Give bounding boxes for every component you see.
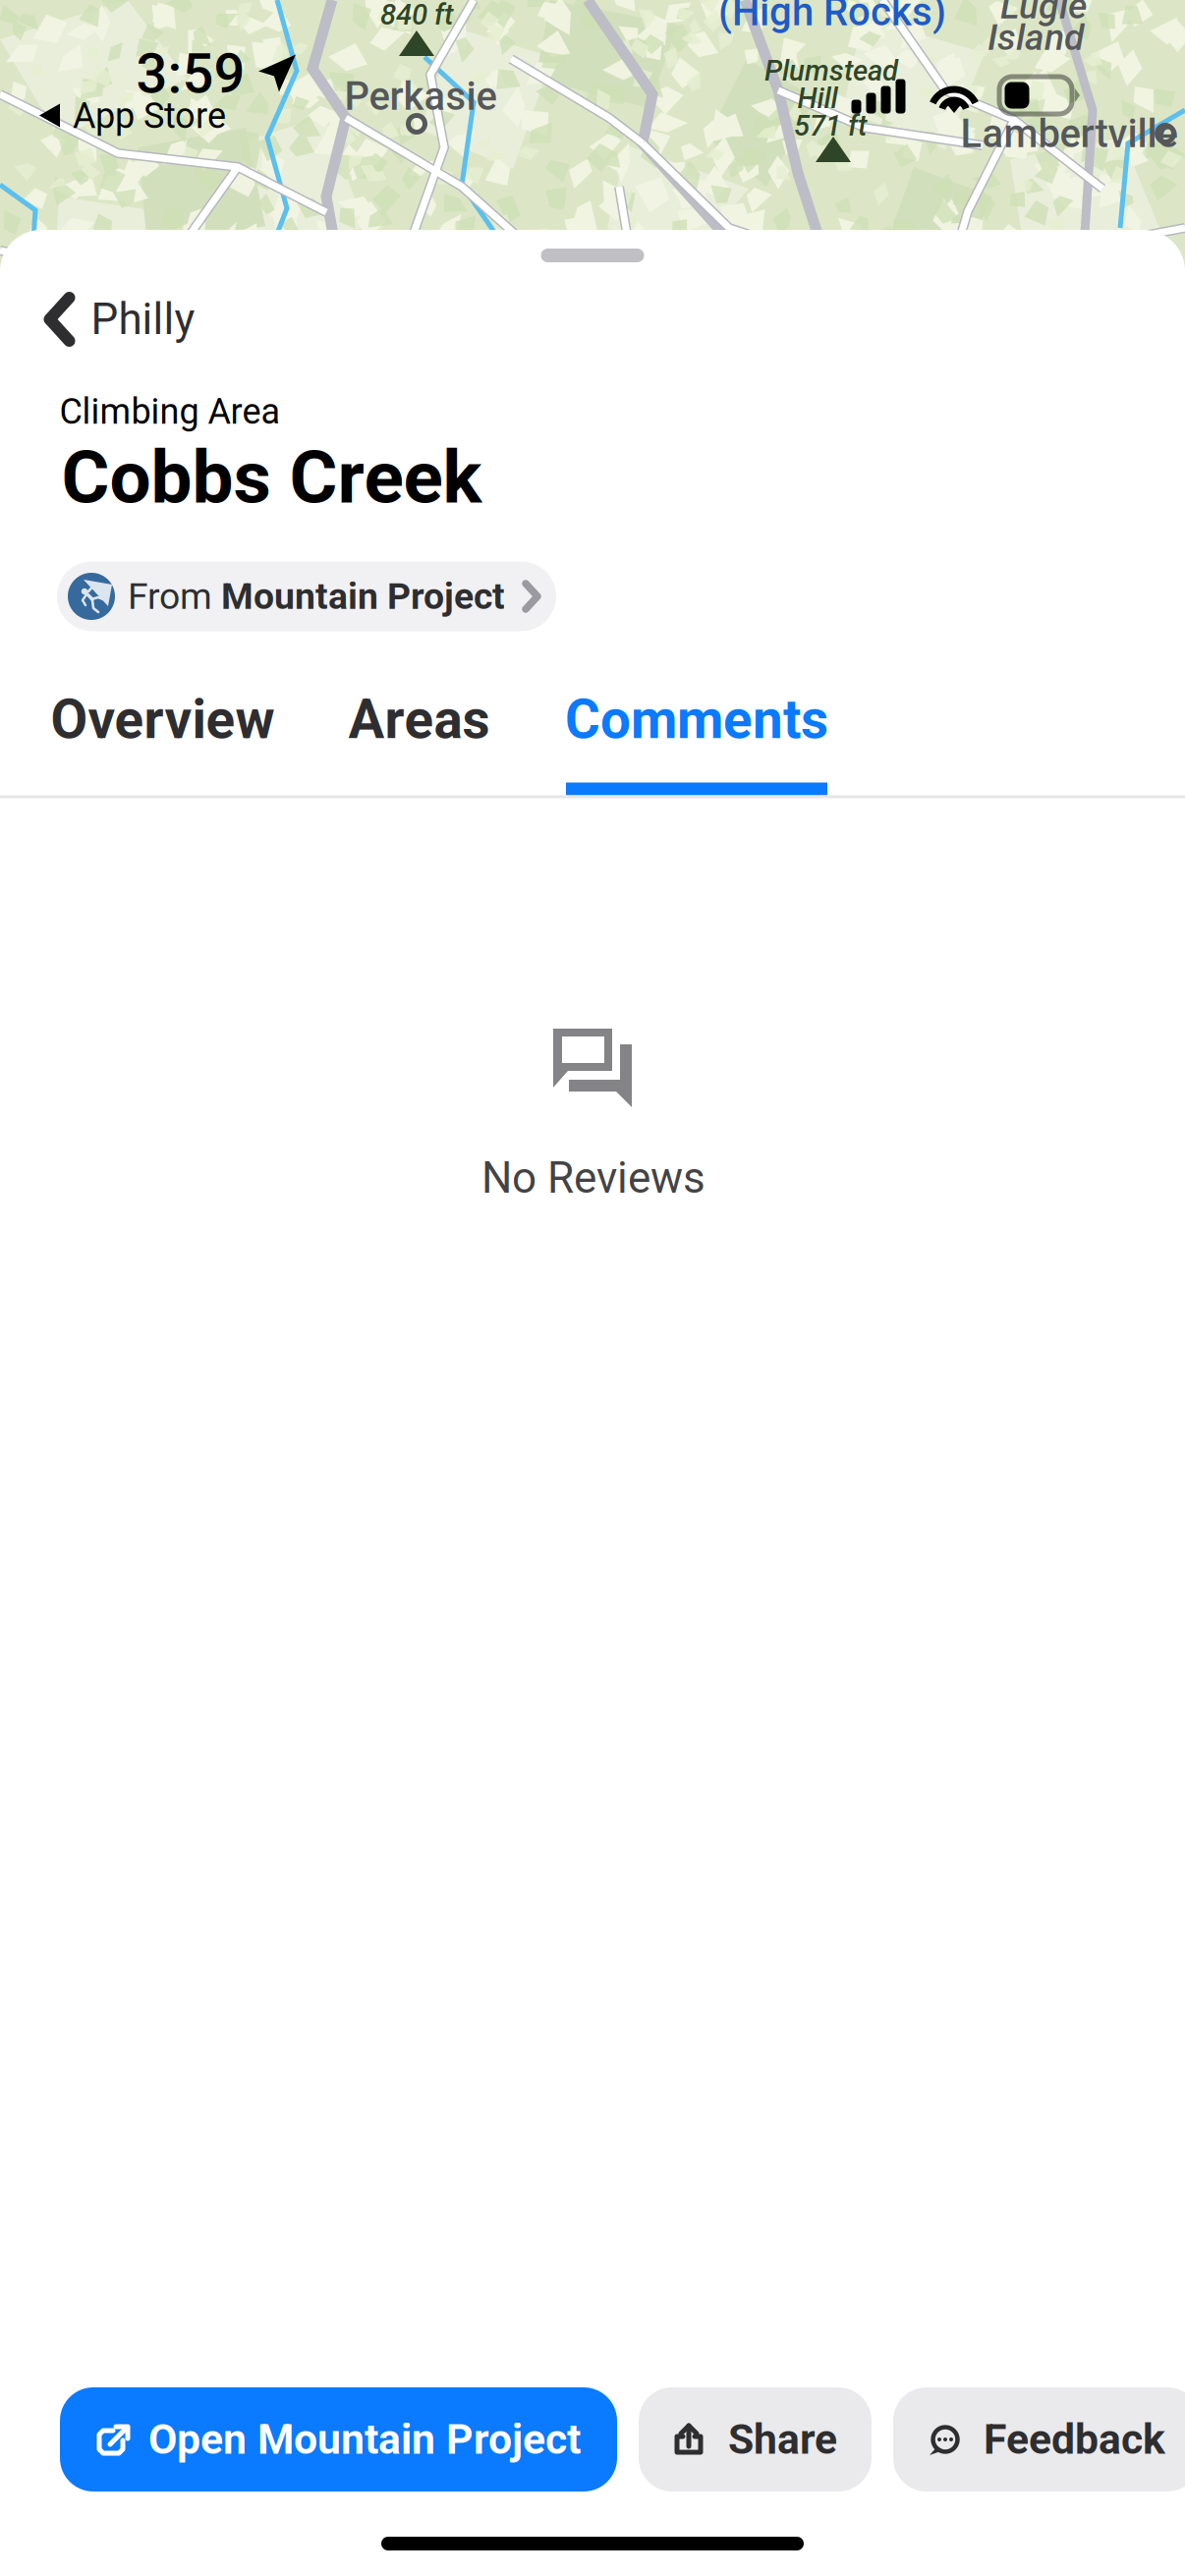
button[interactable]: Overview <box>50 672 275 795</box>
staticText: Lugie <box>1000 0 1087 27</box>
button[interactable]: Feedback <box>893 2387 1185 2492</box>
staticText: Cobbs Creek <box>61 434 482 520</box>
staticText: Mountain Project <box>221 575 505 618</box>
staticText: Philly <box>91 294 195 345</box>
button[interactable]: From <box>57 561 556 631</box>
staticText: Hill <box>797 81 838 115</box>
staticText: Perkasie <box>344 73 497 119</box>
staticText: 840 ft <box>380 0 453 32</box>
button[interactable]: Open Mountain Project <box>60 2387 617 2492</box>
button[interactable]: Philly <box>27 280 211 359</box>
staticText: From <box>128 575 221 618</box>
staticText: Plumstead <box>764 54 898 88</box>
staticText: Climbing Area <box>59 391 281 432</box>
button[interactable]: Share <box>639 2387 872 2492</box>
staticText: 571 ft <box>794 109 867 143</box>
staticText: Overview <box>51 688 275 751</box>
staticText: Lambertville <box>960 111 1178 157</box>
staticText: Areas <box>348 688 490 751</box>
staticText: App Store <box>73 95 226 137</box>
staticText: Feedback <box>984 2415 1165 2464</box>
staticText: Comments <box>565 688 828 751</box>
staticText: Share <box>728 2415 837 2464</box>
staticText: Open Mountain Project <box>148 2415 581 2464</box>
staticText: No Reviews <box>481 1153 705 1203</box>
button[interactable]: Areas <box>349 672 489 795</box>
staticText: 3:59 <box>136 41 245 106</box>
staticText: (High Rocks) <box>718 0 946 35</box>
staticText: Island <box>987 16 1084 59</box>
button[interactable]: Comments <box>566 672 827 795</box>
